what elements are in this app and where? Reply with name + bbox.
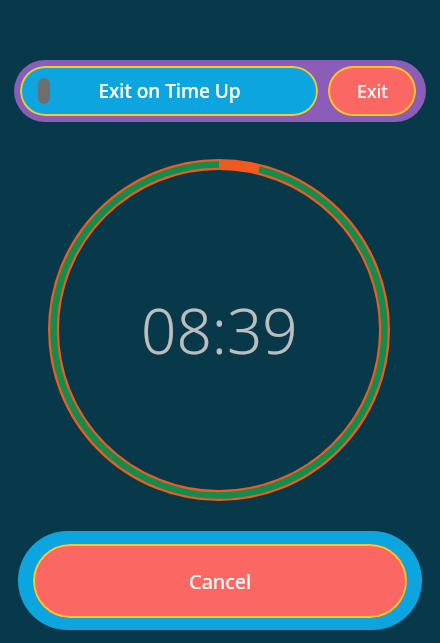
button[interactable]: Cancel (18, 531, 422, 630)
button[interactable]: Exit (328, 66, 416, 116)
button[interactable]: Exit on Time Up (20, 66, 318, 116)
staticText: 08:39 (141, 288, 298, 372)
staticText: Cancel (189, 568, 252, 595)
staticText: Exit on Time Up (98, 78, 241, 104)
staticText: Exit (357, 79, 388, 104)
